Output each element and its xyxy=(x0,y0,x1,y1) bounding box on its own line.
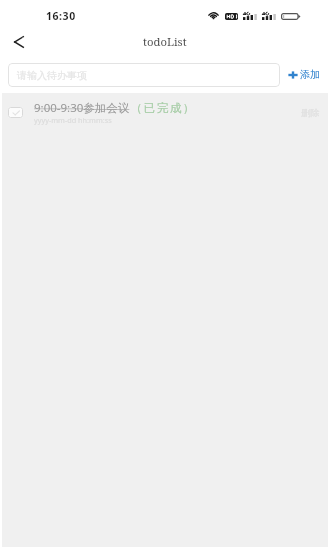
staticText: todoList xyxy=(143,34,187,49)
staticText: 9:00-9:30参加会议 xyxy=(34,100,130,116)
button[interactable]: Mark done xyxy=(0,93,330,127)
button[interactable]: Mark done xyxy=(8,107,23,118)
staticText: （已完成） xyxy=(130,101,195,115)
button[interactable]: 添加 xyxy=(288,63,320,86)
staticText: 16:30 xyxy=(46,9,76,23)
button[interactable]: 删除 xyxy=(301,107,320,119)
staticText: yyyy-mm-dd hh:mm:ss xyxy=(34,115,112,125)
staticText: 添加 xyxy=(300,68,320,81)
button[interactable]: Back xyxy=(6,26,33,57)
button[interactable]: 请输入待办事项 xyxy=(8,63,280,87)
staticText: 请输入待办事项 xyxy=(17,69,87,82)
